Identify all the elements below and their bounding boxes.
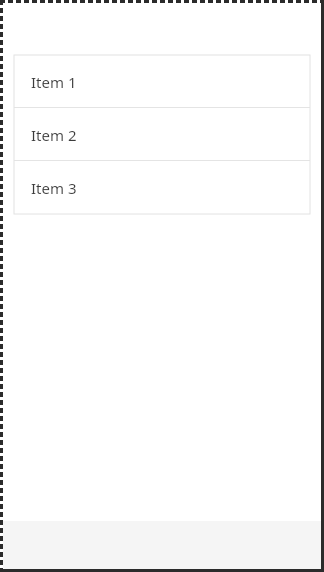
- staticText: Item 2: [31, 125, 77, 145]
- staticText: Item 1: [31, 72, 77, 92]
- button[interactable]: Item 3: [14, 161, 310, 214]
- staticText: Item 3: [31, 178, 77, 198]
- button[interactable]: Item 2: [14, 108, 310, 161]
- button[interactable]: Item 1: [14, 55, 310, 108]
